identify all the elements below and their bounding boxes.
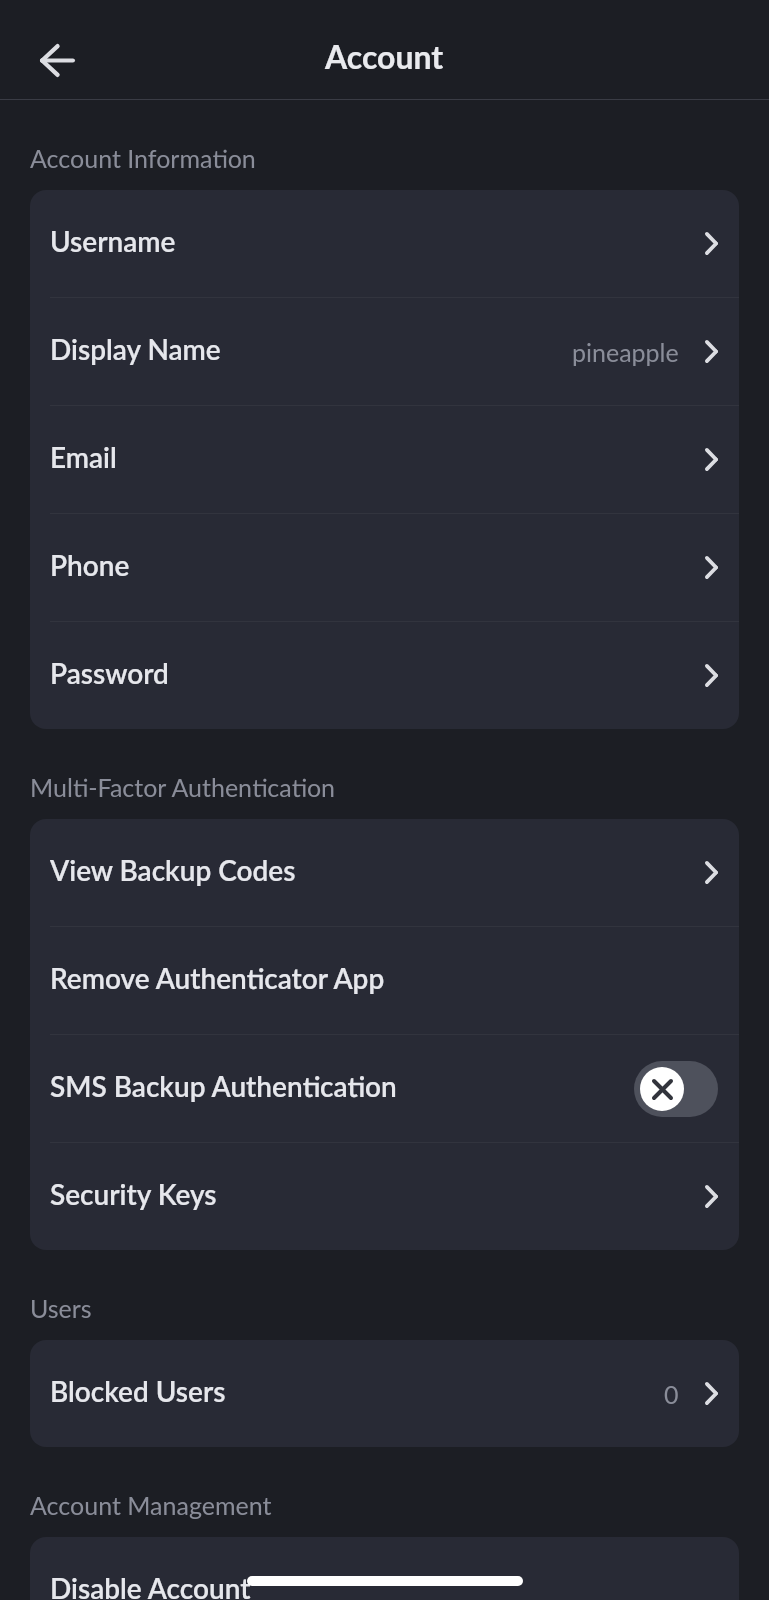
staticText: Display Name bbox=[50, 332, 221, 366]
staticText: Security Keys bbox=[50, 1177, 217, 1211]
staticText: pineapple bbox=[572, 337, 679, 367]
staticText: View Backup Codes bbox=[50, 853, 296, 887]
staticText: Email bbox=[50, 440, 117, 474]
button[interactable]: Email bbox=[30, 406, 739, 513]
staticText: Password bbox=[50, 656, 169, 690]
staticText: Phone bbox=[50, 548, 130, 582]
staticText: 0 bbox=[664, 1379, 679, 1409]
button[interactable]: Display Name bbox=[30, 298, 739, 405]
staticText: Remove Authenticator App bbox=[50, 961, 385, 995]
button[interactable]: Disable Account bbox=[30, 1537, 739, 1600]
button[interactable]: SMS Backup Authentication bbox=[30, 1035, 739, 1142]
button[interactable]: SMS Backup Authentication toggle bbox=[634, 1061, 718, 1117]
button[interactable]: Blocked Users bbox=[30, 1340, 739, 1447]
button[interactable]: Remove Authenticator App bbox=[30, 927, 739, 1034]
button[interactable]: Username bbox=[30, 190, 739, 297]
staticText: Username bbox=[50, 224, 176, 258]
button[interactable]: Password bbox=[30, 622, 739, 729]
staticText: Disable Account bbox=[50, 1571, 251, 1600]
button[interactable]: Security Keys bbox=[30, 1143, 739, 1250]
button[interactable]: View Backup Codes bbox=[30, 819, 739, 926]
button[interactable]: Back bbox=[23, 26, 91, 94]
staticText: Users bbox=[30, 1293, 92, 1323]
staticText: Account Management bbox=[30, 1490, 272, 1520]
staticText: SMS Backup Authentication bbox=[50, 1069, 397, 1103]
staticText: Multi-Factor Authentication bbox=[30, 772, 336, 802]
button[interactable]: Phone bbox=[30, 514, 739, 621]
staticText: Account Information bbox=[30, 143, 256, 173]
staticText: Account bbox=[325, 37, 444, 75]
staticText: Blocked Users bbox=[50, 1374, 226, 1408]
